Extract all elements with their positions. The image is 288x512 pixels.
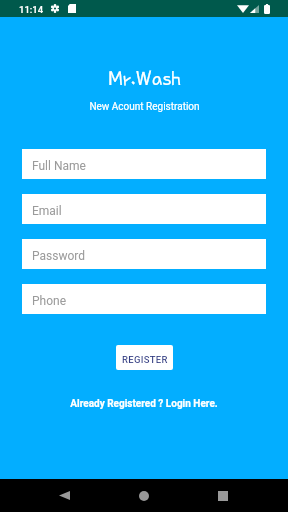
staticText: Phone [32, 294, 67, 308]
staticText: Email [32, 204, 62, 218]
button[interactable]: Phone [22, 284, 266, 314]
staticText: Password [32, 249, 86, 263]
button[interactable]: Recent apps [207, 479, 239, 512]
button[interactable]: Email [22, 194, 266, 224]
button[interactable]: Home [128, 479, 160, 512]
button[interactable]: Full Name [22, 149, 266, 179]
button[interactable]: REGISTER [116, 345, 173, 370]
staticText: REGISTER [122, 354, 168, 365]
button[interactable]: Already Registered ? Login Here. [66, 396, 222, 412]
staticText: New Acount Registration [89, 101, 200, 113]
button[interactable]: Password [22, 239, 266, 269]
staticText: Mr.Wash [108, 67, 181, 90]
staticText: Full Name [32, 159, 86, 173]
button[interactable]: Back [48, 479, 80, 512]
staticText: 11:14 [19, 4, 44, 15]
